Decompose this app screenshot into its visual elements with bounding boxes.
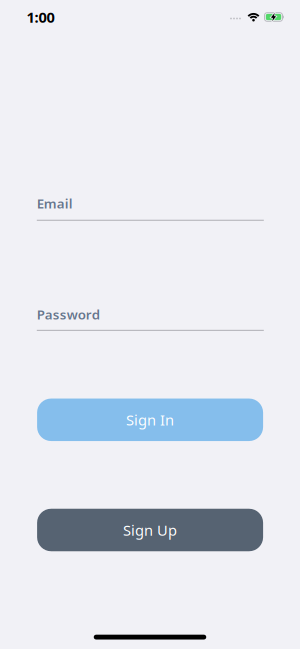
button[interactable]: Email bbox=[37, 190, 264, 224]
staticText: Sign Up bbox=[123, 520, 177, 540]
staticText: Sign In bbox=[126, 410, 174, 430]
staticText: Email bbox=[37, 194, 73, 212]
staticText: 1:00 bbox=[26, 7, 54, 27]
button[interactable]: Sign Up bbox=[37, 509, 263, 551]
button[interactable]: Sign In bbox=[37, 399, 263, 441]
button[interactable]: Password bbox=[37, 300, 264, 334]
staticText: Password bbox=[37, 305, 100, 323]
